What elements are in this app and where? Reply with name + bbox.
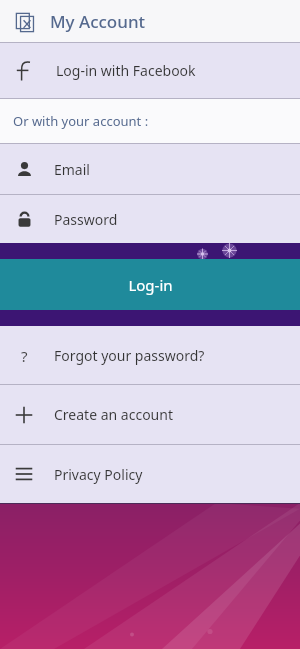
- button[interactable]: ?: [0, 326, 300, 384]
- staticText: Log-in: [128, 275, 173, 295]
- button[interactable]: Privacy Policy: [0, 445, 300, 503]
- staticText: Privacy Policy: [54, 465, 143, 484]
- button[interactable]: Log-in: [0, 259, 300, 310]
- staticText: Log-in with Facebook: [56, 61, 196, 80]
- button[interactable]: Close account pages: [8, 5, 42, 39]
- staticText: Password: [54, 210, 118, 229]
- staticText: Create an account: [54, 405, 173, 424]
- staticText: Or with your account :: [13, 112, 149, 130]
- button[interactable]: Email: [0, 144, 300, 194]
- button[interactable]: Log-in with Facebook: [0, 43, 300, 98]
- staticText: Forgot your password?: [54, 346, 205, 365]
- staticText: My Account: [50, 10, 146, 33]
- button[interactable]: Create an account: [0, 385, 300, 444]
- staticText: Email: [54, 160, 90, 179]
- staticText: ?: [21, 346, 28, 364]
- button[interactable]: Password: [0, 195, 300, 243]
